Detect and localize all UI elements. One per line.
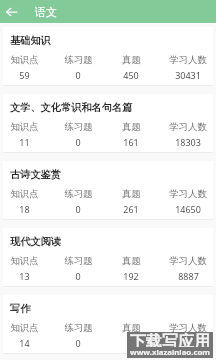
staticText: 真题: [122, 188, 141, 200]
staticText: 13: [19, 270, 30, 282]
staticText: 写作: [10, 302, 31, 315]
staticText: 18: [19, 203, 30, 215]
staticText: 学习人数: [169, 121, 207, 133]
button[interactable]: 现代文阅读: [3, 228, 213, 287]
staticText: 0: [75, 203, 81, 215]
staticText: 基础知识: [10, 34, 51, 47]
staticText: 练习题: [64, 188, 93, 200]
staticText: 语文: [35, 5, 57, 19]
button[interactable]: 写作: [3, 295, 213, 354]
staticText: 练习题: [64, 121, 93, 133]
staticText: 文学、文化常识和名句名篇: [10, 101, 133, 114]
staticText: 14650: [175, 203, 201, 215]
button[interactable]: 基础知识: [3, 27, 213, 86]
staticText: 知识点: [10, 121, 39, 133]
staticText: 192: [123, 270, 139, 282]
staticText: 0: [75, 136, 81, 148]
button[interactable]: 文学、文化常识和名句名篇: [3, 94, 213, 153]
staticText: 30431: [175, 69, 201, 81]
staticText: 14: [19, 337, 30, 349]
staticText: 学习人数: [169, 255, 207, 267]
button[interactable]: 古诗文鉴赏: [3, 161, 213, 220]
staticText: 真题: [122, 322, 141, 334]
staticText: 59: [19, 69, 30, 81]
staticText: 古诗文鉴赏: [10, 168, 61, 181]
staticText: 知识点: [10, 322, 39, 334]
staticText: 450: [123, 69, 139, 81]
staticText: www.xiazainiao.com: [130, 347, 210, 358]
staticText: 学习人数: [169, 322, 207, 334]
staticText: 11: [19, 136, 30, 148]
staticText: 现代文阅读: [10, 235, 61, 248]
staticText: 知识点: [10, 188, 39, 200]
staticText: 知识点: [10, 54, 39, 66]
staticText: 0: [75, 337, 81, 349]
button[interactable]: Back: [6, 1, 28, 23]
staticText: 练习题: [64, 322, 93, 334]
staticText: 知识点: [10, 255, 39, 267]
staticText: 真题: [122, 54, 141, 66]
staticText: 8887: [178, 270, 199, 282]
staticText: 下载写应用: [130, 332, 210, 347]
staticText: 0: [75, 270, 81, 282]
staticText: 161: [123, 136, 139, 148]
staticText: 练习题: [64, 255, 93, 267]
staticText: 真题: [122, 255, 141, 267]
staticText: 0: [75, 69, 81, 81]
staticText: 261: [123, 203, 139, 215]
staticText: 18303: [175, 136, 201, 148]
staticText: 学习人数: [169, 188, 207, 200]
staticText: 学习人数: [169, 54, 207, 66]
staticText: 练习题: [64, 54, 93, 66]
staticText: 真题: [122, 121, 141, 133]
